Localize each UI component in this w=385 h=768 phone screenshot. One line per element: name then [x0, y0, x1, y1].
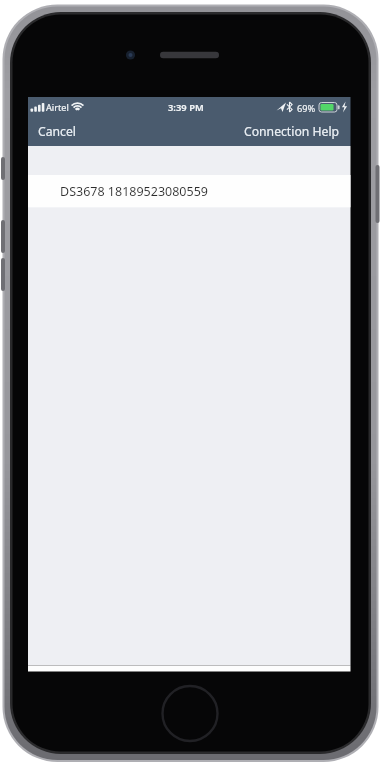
- staticText: 3:39 PM: [168, 101, 204, 114]
- staticText: DS3678 18189523080559: [60, 183, 208, 200]
- button[interactable]: Cancel: [28, 119, 84, 144]
- staticText: 69%: [297, 102, 316, 115]
- button[interactable]: DS3678 18189523080559: [28, 175, 350, 207]
- staticText: Cancel: [38, 123, 76, 140]
- staticText: Connection Help: [244, 123, 340, 140]
- staticText: Airtel: [46, 101, 69, 114]
- button[interactable]: Connection Help: [236, 119, 350, 144]
